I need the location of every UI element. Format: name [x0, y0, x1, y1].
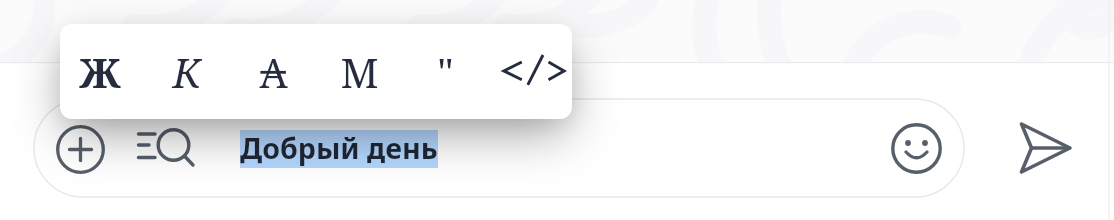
- button[interactable]: Search: [134, 123, 194, 175]
- button[interactable]: Send: [1019, 122, 1072, 175]
- staticText: ": [437, 45, 454, 99]
- button[interactable]: Monospace: [316, 24, 402, 119]
- staticText: М: [340, 45, 379, 99]
- button[interactable]: Quote: [402, 24, 488, 119]
- staticText: Добрый день: [240, 128, 438, 166]
- button[interactable]: Code: [491, 24, 577, 119]
- button[interactable]: Italic: [143, 24, 229, 119]
- button[interactable]: Bold: [57, 24, 143, 119]
- staticText: А: [259, 45, 288, 99]
- staticText: Ж: [79, 45, 121, 99]
- button[interactable]: Attach: [56, 125, 105, 174]
- button[interactable]: Strikethrough: [230, 24, 316, 119]
- staticText: К: [172, 45, 201, 99]
- button[interactable]: Emoji: [891, 123, 942, 174]
